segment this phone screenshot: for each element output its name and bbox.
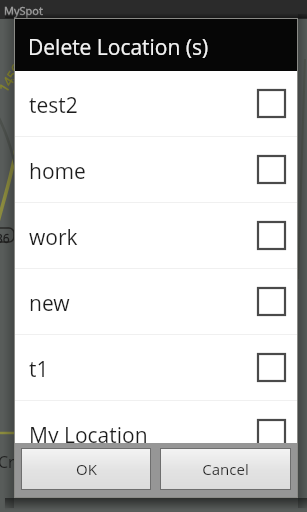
staticText: My Location: [29, 421, 258, 443]
button[interactable]: Cancel: [161, 449, 290, 489]
staticText: work: [29, 223, 258, 252]
staticText: Delete Location (s): [28, 33, 209, 62]
staticText: t1: [29, 355, 258, 384]
button[interactable]: test2: [15, 71, 297, 136]
staticText: OK: [76, 459, 97, 479]
staticText: new: [29, 289, 258, 318]
staticText: Cancel: [202, 459, 249, 479]
staticText: MySpot: [4, 3, 43, 18]
button[interactable]: new: [15, 269, 297, 334]
staticText: test2: [29, 91, 258, 120]
button[interactable]: My Location: [15, 401, 297, 443]
staticText: 1456: [0, 60, 26, 95]
button[interactable]: t1: [15, 335, 297, 400]
staticText: home: [29, 157, 258, 186]
staticText: Cr: [0, 451, 15, 473]
button[interactable]: OK: [22, 449, 150, 489]
staticText: 36: [0, 230, 10, 246]
button[interactable]: work: [15, 203, 297, 268]
button[interactable]: home: [15, 137, 297, 202]
